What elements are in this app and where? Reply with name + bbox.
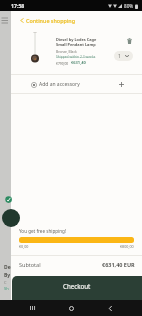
staticText: €790,00 — [56, 61, 69, 65]
staticText: €631,40 — [71, 60, 86, 65]
staticText: €800,00 — [120, 244, 134, 249]
staticText: Checkout — [63, 282, 91, 290]
staticText: 17:58 — [11, 2, 25, 9]
staticText: Bronze, Black — [56, 49, 77, 53]
staticText: Sh — [4, 286, 9, 291]
button[interactable]: Home — [64, 301, 78, 315]
staticText: De — [4, 264, 11, 271]
button[interactable]: Remove item — [124, 35, 135, 46]
button[interactable]: Checkout — [12, 276, 142, 301]
staticText: 1 — [118, 53, 121, 59]
button[interactable]: Add an accessory — [11, 75, 142, 93]
staticText: Diesel by Lodes Cage — [56, 37, 97, 42]
button[interactable]: 1 — [114, 51, 133, 61]
staticText: Add an accessory — [39, 81, 80, 88]
staticText: By — [4, 272, 11, 279]
staticText: Subtotal — [19, 261, 41, 268]
staticText: Small Pendant Lamp — [56, 42, 96, 47]
staticText: You get free shipping! — [19, 228, 67, 234]
staticText: 80% — [124, 3, 134, 9]
staticText: Shipped within 2-3 weeks — [56, 54, 96, 58]
button[interactable]: Continue shopping — [20, 17, 76, 24]
button[interactable]: Recent apps — [25, 301, 39, 315]
staticText: Continue shopping — [26, 17, 76, 24]
staticText: €0,00 — [19, 244, 29, 249]
staticText: €631,40 EUR — [102, 261, 135, 268]
button[interactable]: Back — [103, 301, 117, 315]
staticText: C — [4, 280, 7, 285]
